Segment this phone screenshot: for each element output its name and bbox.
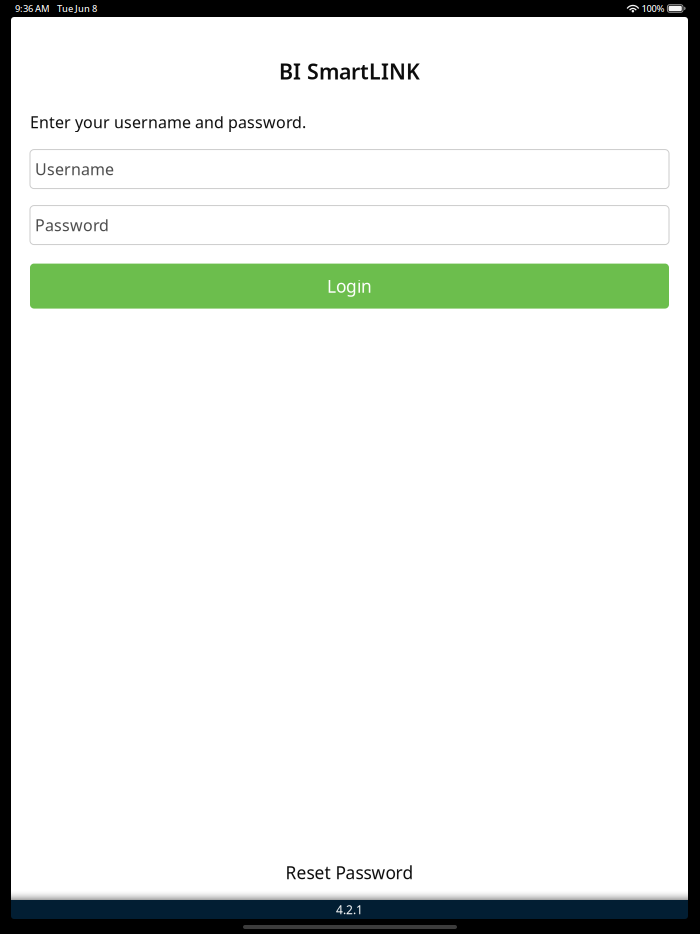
staticText: 100% <box>641 2 664 15</box>
staticText: Reset Password <box>285 861 413 884</box>
button[interactable]: Reset Password <box>271 852 427 889</box>
staticText: Password <box>35 214 109 236</box>
staticText: BI SmartLINK <box>279 57 420 85</box>
staticText: 4.2.1 <box>336 901 363 917</box>
staticText: 9:36 AM <box>15 2 50 15</box>
staticText: Tue Jun 8 <box>57 2 97 15</box>
staticText: Login <box>327 275 372 298</box>
button[interactable]: Password <box>30 206 669 245</box>
staticText: Username <box>35 158 114 180</box>
button[interactable]: Username <box>30 150 669 189</box>
button[interactable]: Login <box>30 264 669 309</box>
staticText: Enter your username and password. <box>30 111 306 132</box>
